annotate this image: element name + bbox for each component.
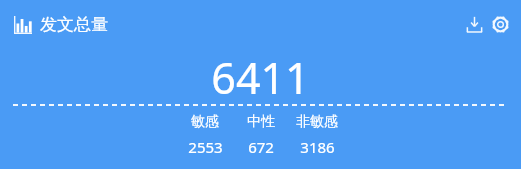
staticText: 发文总量 — [40, 14, 108, 35]
staticText: 2553 — [188, 137, 223, 157]
button[interactable]: 敏感 — [175, 113, 235, 157]
button[interactable]: Settings — [488, 12, 512, 36]
staticText: 中性 — [247, 113, 275, 131]
button[interactable]: 非敏感 — [287, 113, 347, 157]
staticText: 3186 — [300, 137, 335, 157]
staticText: 672 — [248, 137, 274, 157]
staticText: 敏感 — [191, 113, 219, 131]
staticText: 6411 — [211, 48, 310, 97]
staticText: 非敏感 — [296, 113, 338, 131]
button[interactable]: Download — [462, 12, 486, 36]
button[interactable]: 中性 — [235, 113, 287, 157]
